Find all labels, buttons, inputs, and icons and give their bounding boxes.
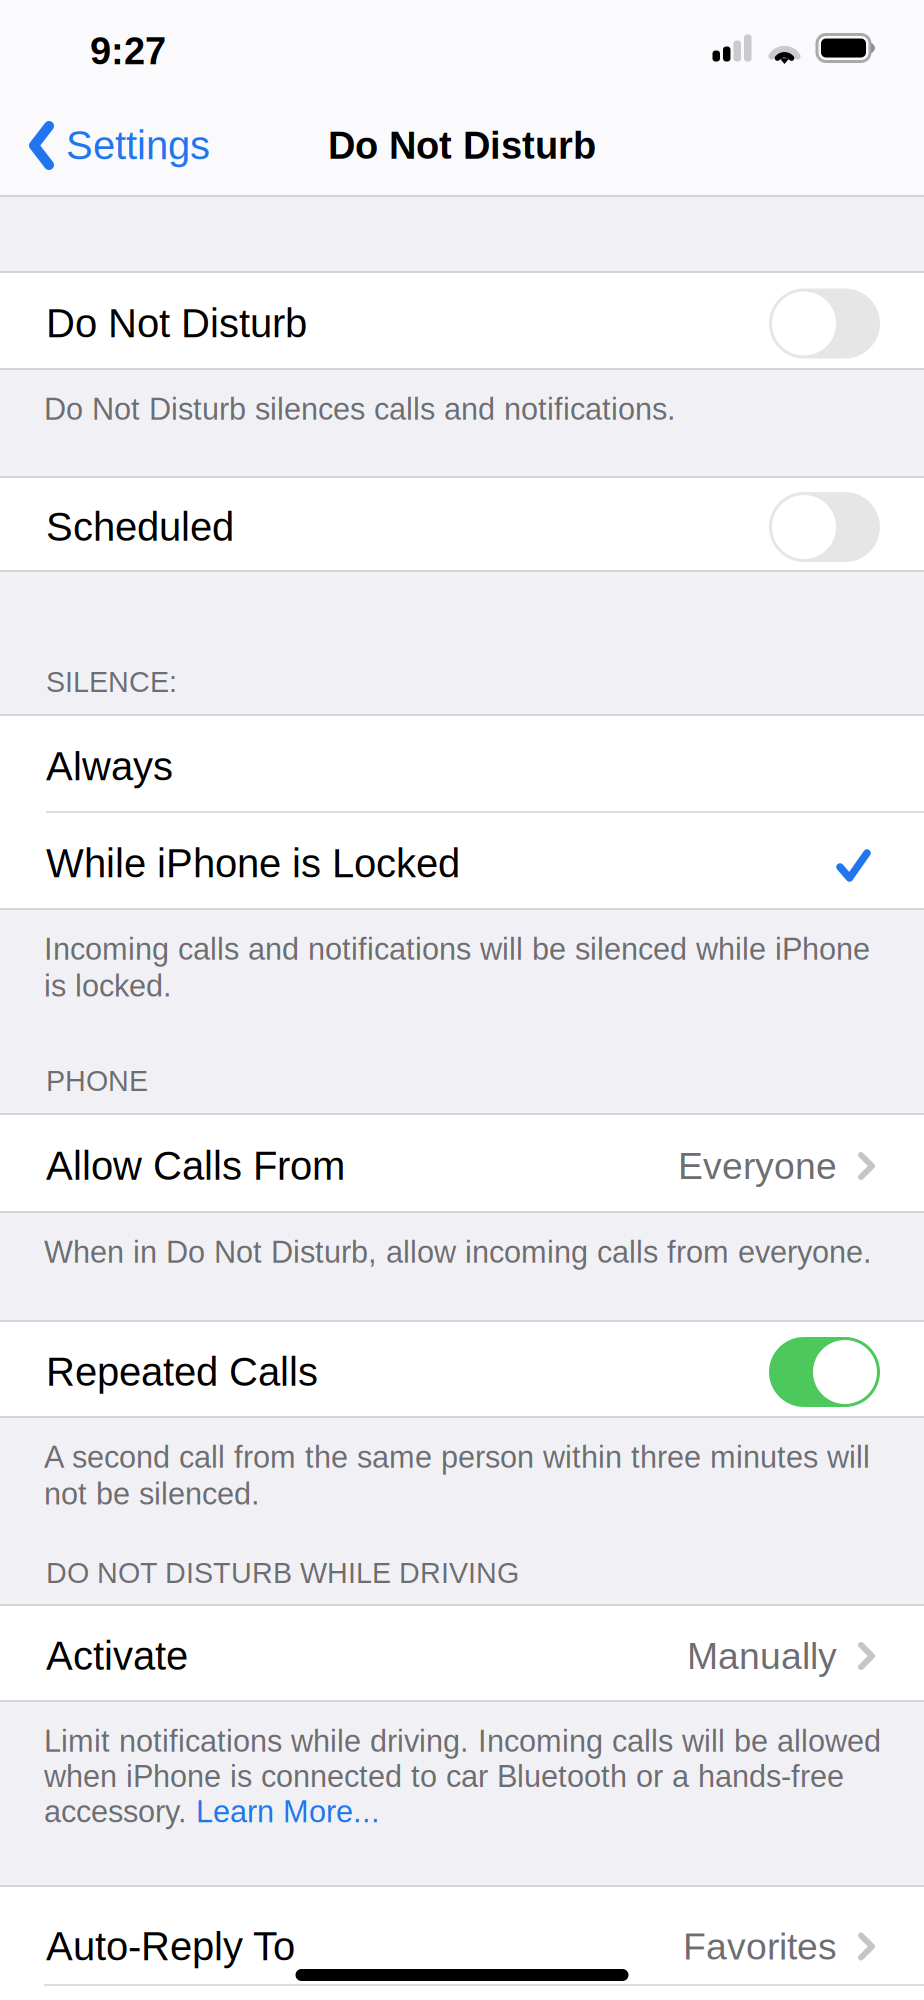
staticText: Do Not Disturb — [328, 124, 596, 167]
staticText: 9:27 — [90, 30, 166, 72]
staticText: Learn More... — [196, 1794, 380, 1829]
button[interactable]: Repeated Calls — [0, 1322, 924, 1416]
staticText: Settings — [66, 123, 210, 168]
staticText: PHONE — [46, 1065, 148, 1097]
button[interactable]: Scheduled — [0, 478, 924, 570]
staticText: Favorites — [683, 1926, 837, 1967]
button[interactable]: Always — [0, 716, 924, 811]
staticText: While iPhone is Locked — [46, 841, 460, 886]
staticText: SILENCE: — [46, 666, 177, 698]
staticText: When in Do Not Disturb, allow incoming c… — [44, 1235, 872, 1269]
staticText: DO NOT DISTURB WHILE DRIVING — [46, 1557, 519, 1589]
staticText: when iPhone is connected to car Bluetoot… — [44, 1759, 844, 1794]
button[interactable]: Activate — [0, 1606, 924, 1700]
staticText: Do Not Disturb — [46, 301, 307, 346]
staticText: Allow Calls From — [46, 1144, 345, 1188]
button[interactable]: While iPhone is Locked — [0, 813, 924, 908]
button[interactable]: Settings — [0, 96, 230, 195]
staticText: Do Not Disturb silences calls and notifi… — [44, 392, 676, 426]
staticText: Always — [46, 744, 173, 789]
staticText: Auto-Reply To — [46, 1924, 295, 1969]
staticText: accessory. — [44, 1794, 196, 1829]
button[interactable]: Allow Calls From — [0, 1115, 924, 1211]
staticText: Incoming calls and notifications will be… — [44, 932, 870, 1003]
staticText: Repeated Calls — [46, 1350, 318, 1394]
button[interactable]: Do Not Disturb — [0, 273, 924, 368]
button[interactable]: Auto-Reply To — [0, 1887, 924, 2000]
staticText: Scheduled — [46, 505, 234, 549]
staticText: Manually — [687, 1635, 837, 1677]
staticText: Limit notifications while driving. Incom… — [44, 1724, 881, 1758]
staticText: Activate — [46, 1634, 188, 1678]
staticText: Everyone — [678, 1145, 837, 1187]
staticText: A second call from the same person withi… — [44, 1440, 870, 1511]
